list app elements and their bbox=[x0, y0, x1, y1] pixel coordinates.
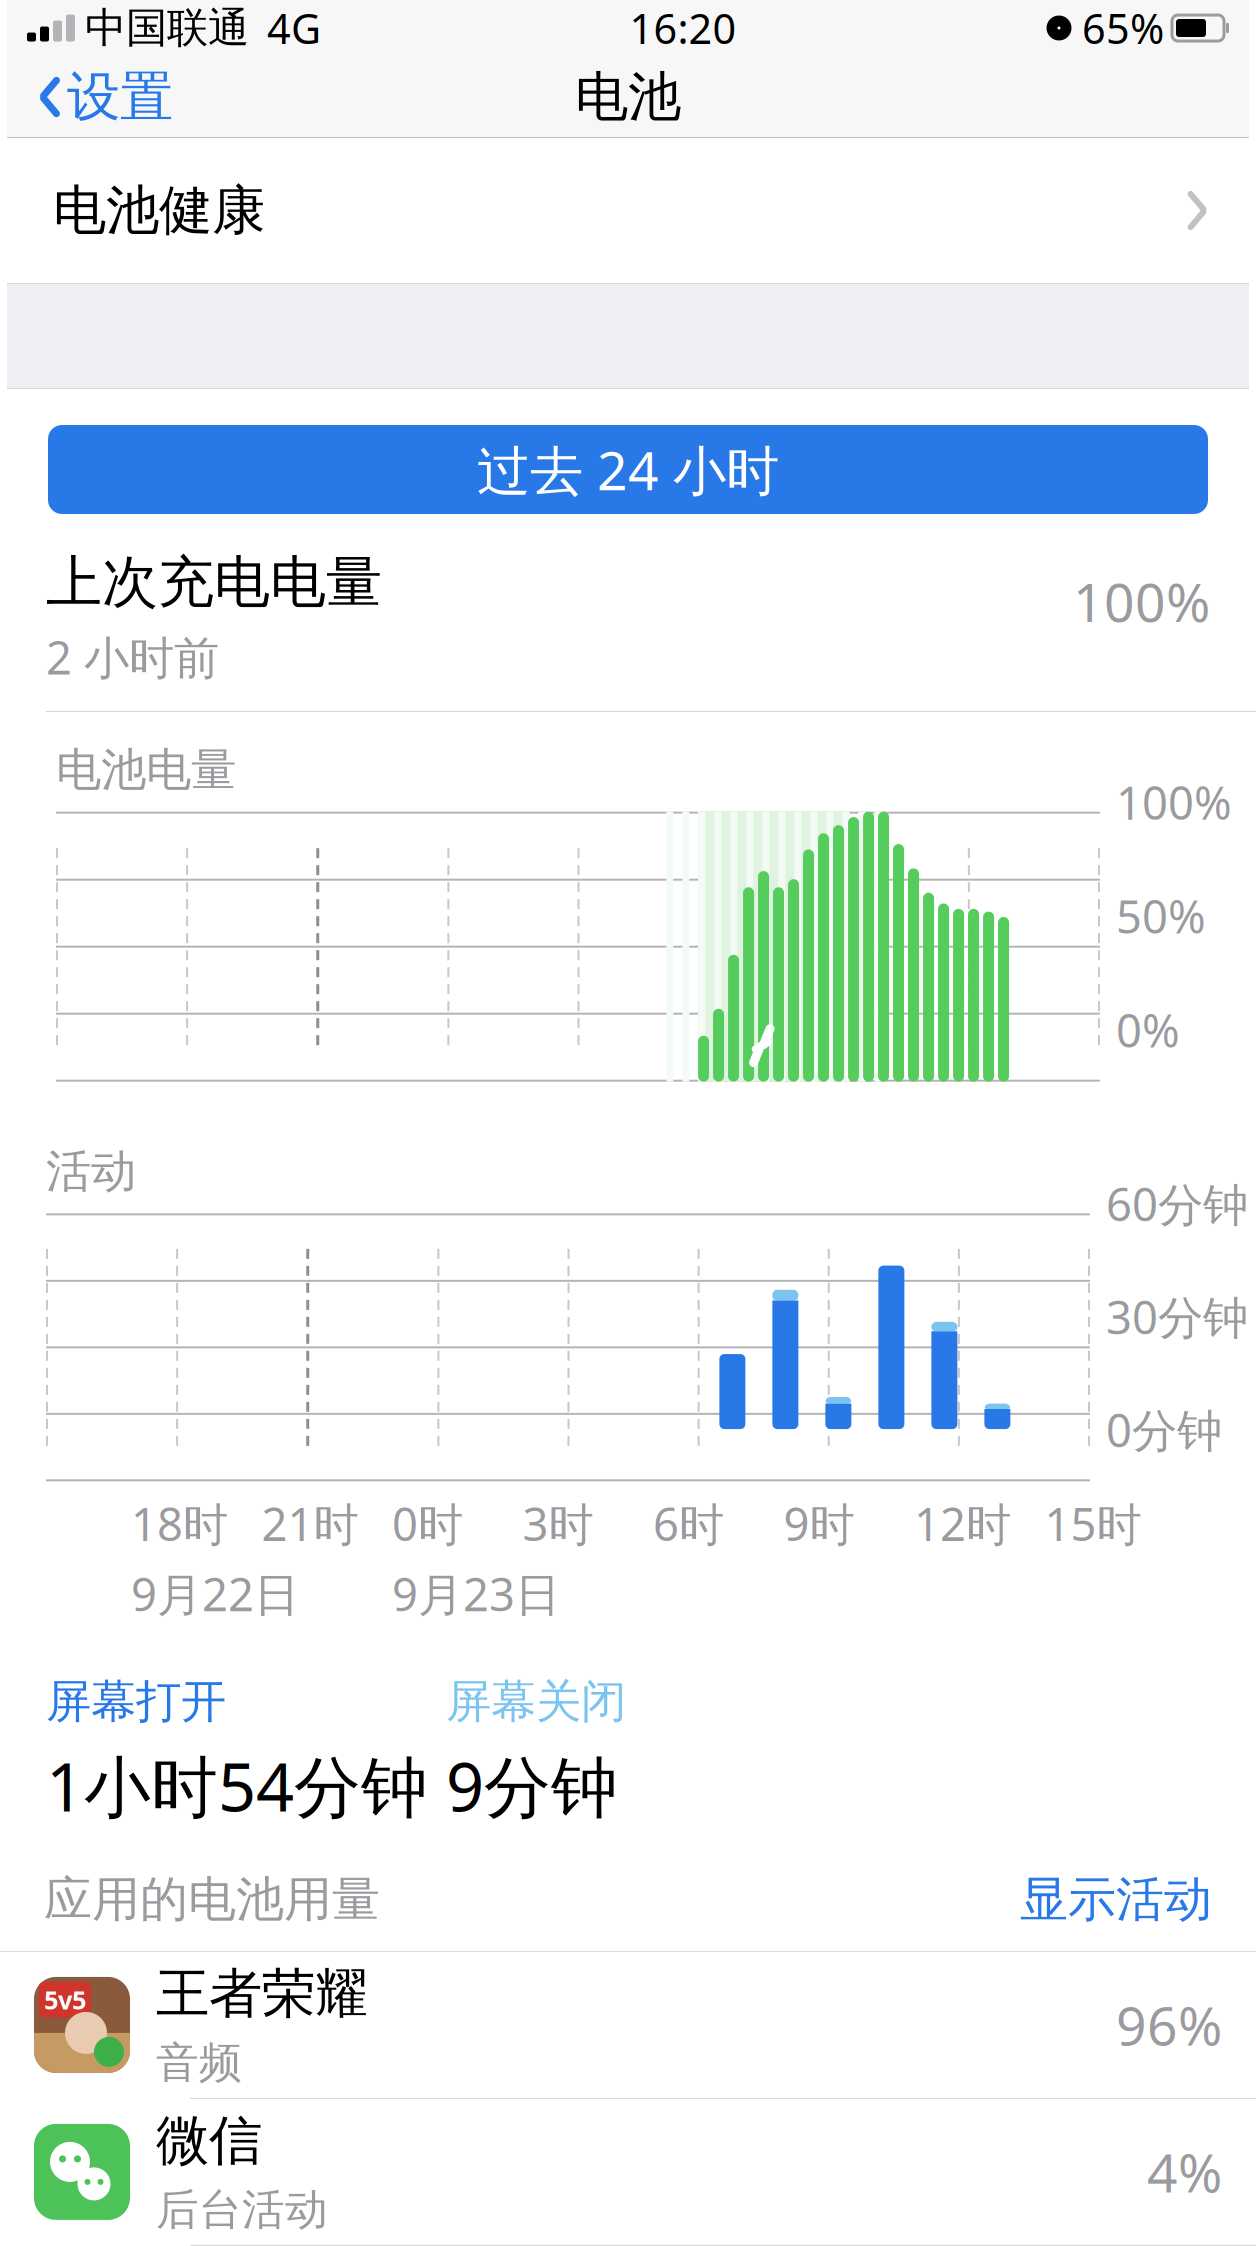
button[interactable]: 过去 24 小时 bbox=[48, 425, 1208, 514]
staticText: 4% bbox=[1147, 2136, 1222, 2207]
staticText: 5v5 bbox=[44, 1983, 86, 2016]
staticText: 0% bbox=[1116, 1000, 1180, 1060]
button[interactable]: 设置 bbox=[35, 56, 177, 138]
staticText: 96% bbox=[1116, 1989, 1222, 2060]
button[interactable]: 5v5 bbox=[0, 1952, 1256, 2098]
staticText: 微信 bbox=[156, 2108, 262, 2173]
staticText: 21时 bbox=[261, 1493, 358, 1553]
staticText: 60分钟 bbox=[1106, 1174, 1248, 1234]
staticText: 应用的电池用量 bbox=[44, 1870, 380, 1929]
staticText: 0分钟 bbox=[1106, 1399, 1222, 1460]
staticText: 6时 bbox=[653, 1493, 724, 1553]
staticText: 9月23日 bbox=[392, 1563, 560, 1624]
staticText: 9时 bbox=[783, 1493, 854, 1553]
staticText: 9分钟 bbox=[446, 1741, 618, 1830]
staticText: 活动 bbox=[46, 1144, 136, 1199]
staticText: 9月22日 bbox=[131, 1563, 299, 1624]
button[interactable]: 显示活动 bbox=[1020, 1870, 1212, 1929]
staticText: 1小时54分钟 bbox=[46, 1741, 428, 1830]
staticText: 3时 bbox=[522, 1493, 593, 1553]
staticText: 中国联通 bbox=[85, 3, 249, 53]
staticText: 屏幕打开 bbox=[46, 1674, 226, 1729]
staticText: 2 小时前 bbox=[46, 627, 219, 687]
staticText: 30分钟 bbox=[1106, 1287, 1248, 1347]
staticText: 15时 bbox=[1044, 1493, 1141, 1553]
button[interactable]: 微信 bbox=[0, 2098, 1256, 2245]
staticText: 100% bbox=[1073, 566, 1210, 637]
staticText: 过去 24 小时 bbox=[477, 434, 779, 505]
staticText: 电池 bbox=[575, 64, 681, 130]
staticText: 屏幕关闭 bbox=[446, 1674, 626, 1729]
staticText: 音频 bbox=[156, 2036, 242, 2089]
staticText: 12时 bbox=[914, 1493, 1011, 1553]
staticText: 设置 bbox=[67, 64, 173, 130]
staticText: 16:20 bbox=[629, 1, 736, 55]
staticText: 4G bbox=[267, 1, 321, 55]
staticText: 18时 bbox=[131, 1493, 228, 1553]
staticText: 上次充电电量 bbox=[46, 548, 382, 617]
staticText: 0时 bbox=[392, 1493, 463, 1553]
staticText: 后台活动 bbox=[156, 2183, 328, 2236]
staticText: 王者荣耀 bbox=[156, 1961, 368, 2026]
staticText: 100% bbox=[1116, 772, 1232, 832]
button[interactable]: 电池健康 bbox=[7, 138, 1249, 283]
staticText: 电池电量 bbox=[56, 742, 236, 798]
staticText: 电池健康 bbox=[53, 178, 265, 243]
staticText: 65% bbox=[1082, 1, 1164, 55]
staticText: 50% bbox=[1116, 886, 1206, 946]
staticText: 显示活动 bbox=[1020, 1870, 1212, 1929]
